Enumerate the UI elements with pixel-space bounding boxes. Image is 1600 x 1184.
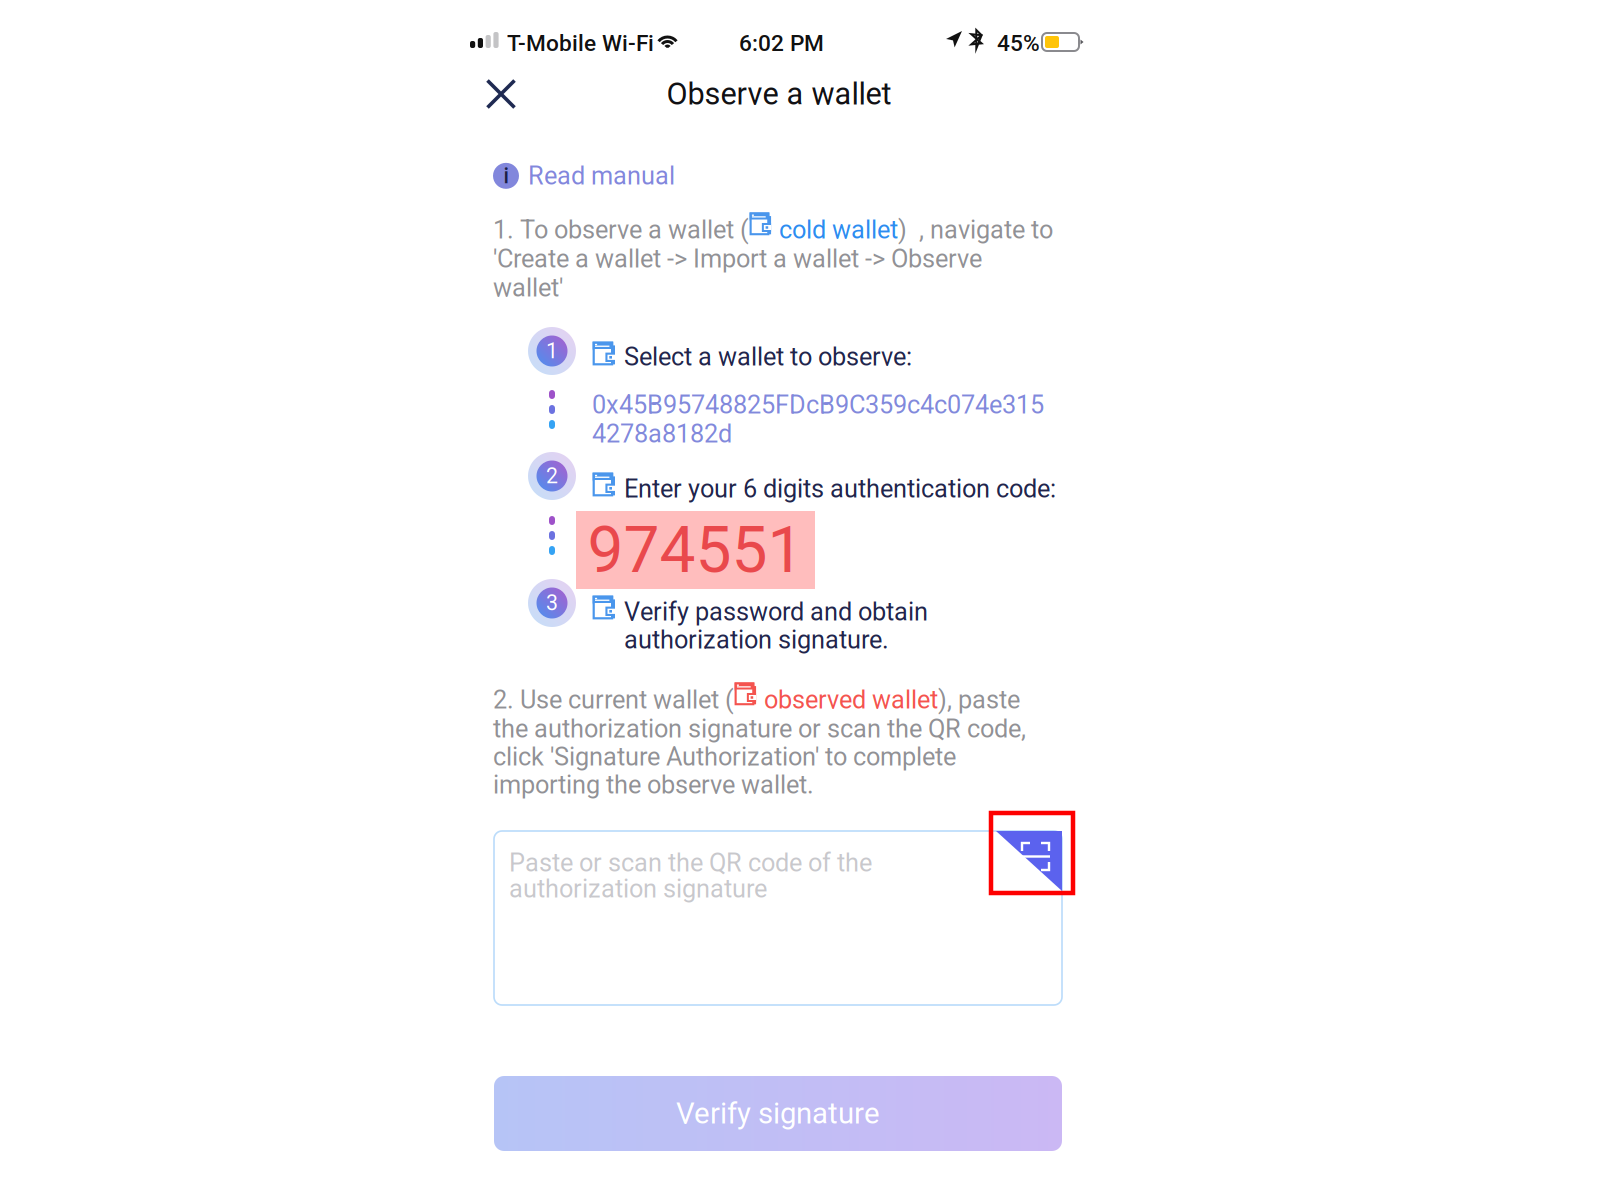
staticText: 'Create a wallet -> Import a wallet -> O… (493, 244, 982, 274)
button[interactable]: Verify signature (494, 1076, 1062, 1151)
staticText: authorization signature. (624, 625, 889, 655)
button[interactable]: Scan QR code (996, 831, 1062, 891)
staticText: 974551 (587, 512, 803, 587)
staticText: Select a wallet to observe: (624, 342, 912, 372)
staticText: 1 (546, 338, 558, 363)
staticText: 4278a8182d (592, 419, 732, 449)
staticText: click 'Signature Authorization' to compl… (493, 742, 956, 772)
staticText: ) , navigate to (898, 215, 1053, 245)
staticText: Observe a wallet (666, 76, 891, 112)
staticText: 2 (546, 463, 558, 488)
staticText: 0x45B95748825FDcB9C359c4c074e315 (592, 390, 1044, 420)
staticText: Paste or scan the QR code of the (509, 848, 872, 878)
staticText: 2. Use current wallet ( (493, 685, 734, 715)
staticText: observed wallet (758, 685, 938, 715)
staticText: Enter your 6 digits authentication code: (624, 474, 1056, 504)
staticText: cold wallet (773, 215, 898, 245)
staticText: i (503, 163, 508, 188)
staticText: importing the observe wallet. (493, 770, 814, 800)
staticText: 6:02 PM (739, 30, 824, 57)
staticText: authorization signature (509, 874, 767, 904)
staticText: T-Mobile Wi-Fi (507, 30, 654, 57)
staticText: 1. To observe a wallet ( (493, 215, 749, 245)
staticText: ), paste (938, 685, 1020, 715)
button[interactable]: Close (470, 60, 532, 128)
staticText: 3 (546, 590, 558, 615)
staticText: 45% (997, 30, 1040, 57)
staticText: the authorization signature or scan the … (493, 714, 1026, 744)
button[interactable]: i (493, 161, 675, 191)
staticText: Verify password and obtain (624, 597, 928, 627)
staticText: Read manual (528, 161, 675, 191)
staticText: wallet' (493, 273, 563, 303)
staticText: Verify signature (676, 1096, 880, 1131)
